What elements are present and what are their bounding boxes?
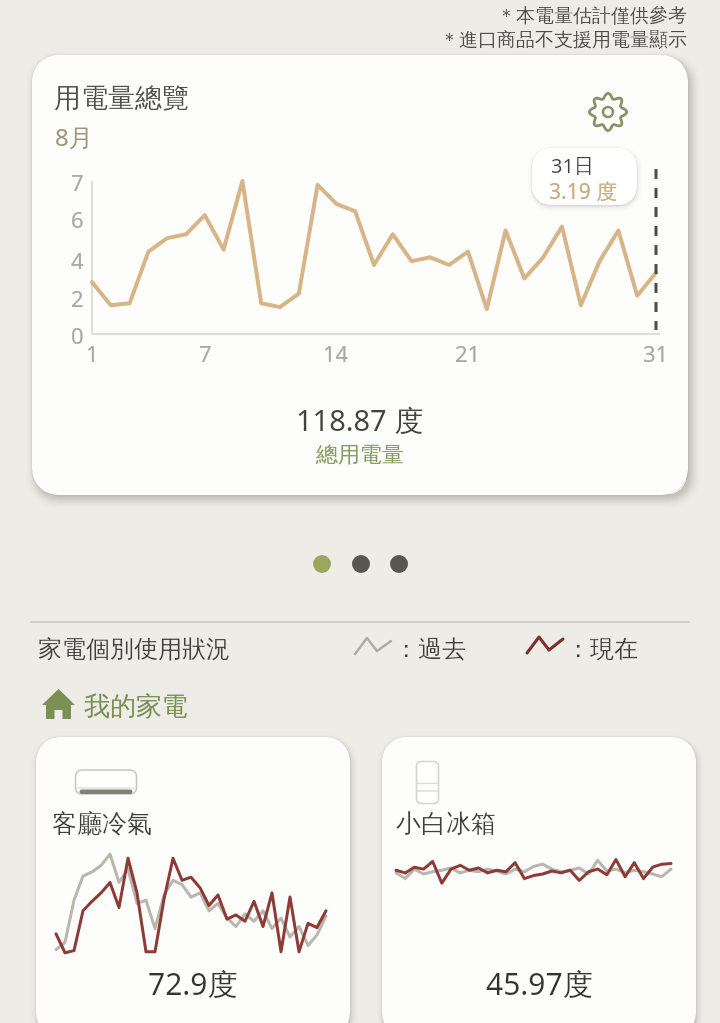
staticText: 用電量總覽 <box>54 81 189 115</box>
staticText: 72.9度 <box>148 963 238 1004</box>
staticText: ＊本電量估計僅供參考 <box>497 4 687 28</box>
staticText: 我的家電 <box>84 690 188 723</box>
staticText: 小白冰箱 <box>396 808 496 839</box>
staticText: 客廳冷氣 <box>52 808 152 839</box>
staticText: 118.87 度 <box>296 400 424 440</box>
staticText: 3.19 度 <box>549 177 618 206</box>
staticText: 21 <box>455 338 481 368</box>
staticText: 6 <box>71 204 84 232</box>
staticText: ：現在 <box>566 634 638 664</box>
staticText: 7 <box>71 167 84 195</box>
staticText: 8月 <box>55 120 93 153</box>
staticText: 45.97度 <box>486 963 593 1004</box>
staticText: 1 <box>86 338 99 368</box>
staticText: 14 <box>323 338 349 368</box>
staticText: 7 <box>199 338 212 368</box>
staticText: 31 <box>643 338 669 368</box>
button[interactable] <box>586 90 630 134</box>
staticText: ＊進口商品不支援用電量顯示 <box>440 28 687 52</box>
staticText: 0 <box>71 320 84 348</box>
staticText: 31日 <box>551 152 594 179</box>
staticText: 家電個別使用狀況 <box>38 634 230 664</box>
staticText: 2 <box>71 283 84 311</box>
button[interactable] <box>32 55 688 495</box>
staticText: ：過去 <box>394 634 466 664</box>
staticText: 4 <box>71 245 84 273</box>
button[interactable] <box>382 737 696 1023</box>
button[interactable] <box>36 737 350 1023</box>
staticText: 總用電量 <box>316 441 404 469</box>
